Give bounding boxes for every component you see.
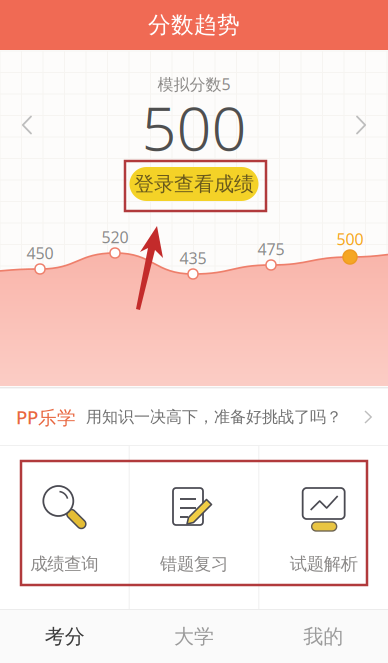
- staticText: 450: [26, 242, 53, 264]
- button[interactable]: 错题复习: [130, 446, 258, 609]
- staticText: 520: [101, 226, 128, 248]
- staticText: 435: [179, 247, 206, 269]
- staticText: 试题解析: [290, 553, 358, 575]
- staticText: 成绩查询: [30, 553, 98, 575]
- staticText: 登录查看成绩: [134, 172, 254, 196]
- button[interactable]: 试题解析: [259, 446, 388, 609]
- button[interactable]: 考分: [0, 610, 129, 663]
- button[interactable]: 大学: [129, 610, 259, 663]
- staticText: 500: [336, 228, 363, 250]
- button[interactable]: PP乐学: [0, 389, 388, 445]
- staticText: 用知识一决高下，准备好挑战了吗？: [76, 407, 342, 427]
- staticText: PP乐学: [16, 405, 76, 429]
- button[interactable]: 登录查看成绩: [129, 167, 258, 201]
- staticText: 大学: [174, 624, 214, 649]
- staticText: 模拟分数5: [157, 73, 230, 95]
- staticText: 考分: [45, 624, 85, 649]
- button[interactable]: Next: [341, 100, 382, 149]
- staticText: 500: [141, 86, 246, 168]
- staticText: 475: [257, 238, 284, 260]
- staticText: 我的: [303, 624, 343, 649]
- staticText: 错题复习: [160, 553, 228, 575]
- button[interactable]: 成绩查询: [0, 446, 129, 609]
- button[interactable]: 我的: [259, 610, 388, 663]
- button[interactable]: Previous: [6, 100, 47, 149]
- staticText: 分数趋势: [148, 11, 240, 39]
